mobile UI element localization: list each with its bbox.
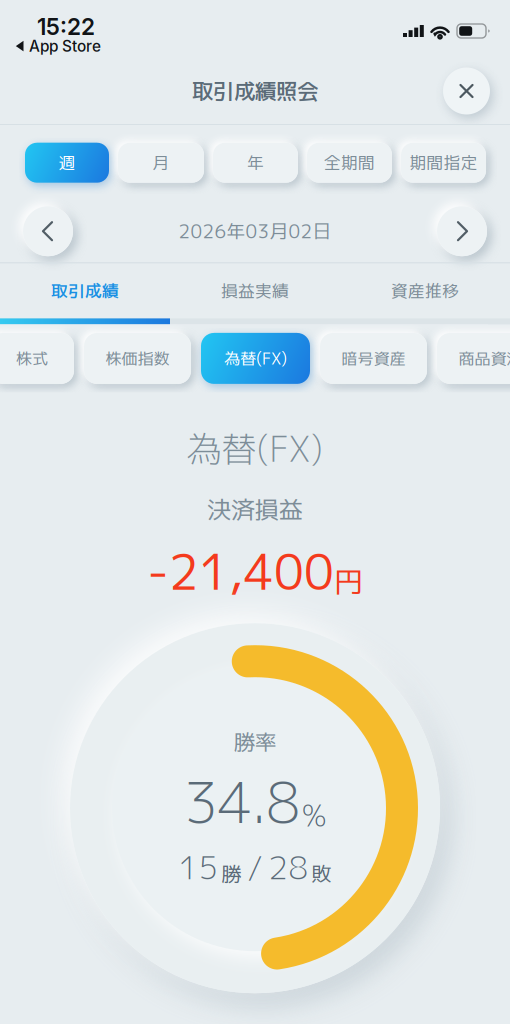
staticText: 資産推移 [391, 279, 459, 302]
staticText: 勝率 [234, 727, 276, 757]
button[interactable]: 月 [118, 143, 204, 183]
staticText: 勝 [221, 860, 241, 887]
staticText: 年 [247, 151, 264, 174]
staticText: 取引成績照会 [192, 76, 318, 106]
button[interactable]: 期間指定 [401, 143, 486, 183]
staticText: 取引成績 [51, 279, 119, 302]
button[interactable]: 暗号資産 [320, 333, 427, 384]
staticText: App Store [29, 37, 101, 56]
staticText: 34.8 [184, 763, 300, 841]
staticText: 期間指定 [409, 151, 477, 174]
staticText: 損益実績 [221, 279, 289, 302]
staticText: 週 [58, 151, 75, 174]
button[interactable]: 年 [213, 143, 298, 183]
button[interactable]: 週 [25, 143, 109, 183]
button[interactable]: 取引成績 [0, 263, 170, 318]
button[interactable]: Next period [437, 206, 487, 256]
button[interactable]: 商品資源 [437, 333, 510, 384]
staticText: -21,400 [147, 538, 334, 605]
staticText: 2026年03月02日 [178, 218, 331, 244]
button[interactable]: Previous period [23, 206, 73, 256]
staticText: 商品資源 [458, 347, 510, 369]
staticText: 全期間 [324, 151, 375, 174]
staticText: 15 [178, 845, 218, 889]
button[interactable]: 株価指数 [84, 333, 191, 384]
button[interactable]: 全期間 [307, 143, 392, 183]
staticText: 決済損益 [207, 493, 303, 526]
staticText: 暗号資産 [341, 347, 405, 369]
button[interactable]: 損益実績 [170, 263, 340, 318]
button[interactable]: 為替(FX) [201, 333, 310, 384]
staticText: 株価指数 [105, 347, 169, 369]
staticText: / [247, 845, 262, 889]
staticText: 為替(FX) [186, 424, 323, 473]
staticText: % [302, 795, 326, 836]
staticText: 月 [152, 151, 169, 174]
staticText: 28 [268, 845, 308, 889]
button[interactable]: 資産推移 [340, 263, 510, 318]
staticText: 円 [334, 561, 363, 602]
staticText: 15:22 [37, 13, 95, 40]
button[interactable]: 株式 [0, 333, 74, 384]
button[interactable]: Close [443, 67, 490, 114]
staticText: 為替(FX) [224, 347, 287, 369]
staticText: 敗 [311, 860, 331, 887]
staticText: 株式 [16, 347, 48, 369]
